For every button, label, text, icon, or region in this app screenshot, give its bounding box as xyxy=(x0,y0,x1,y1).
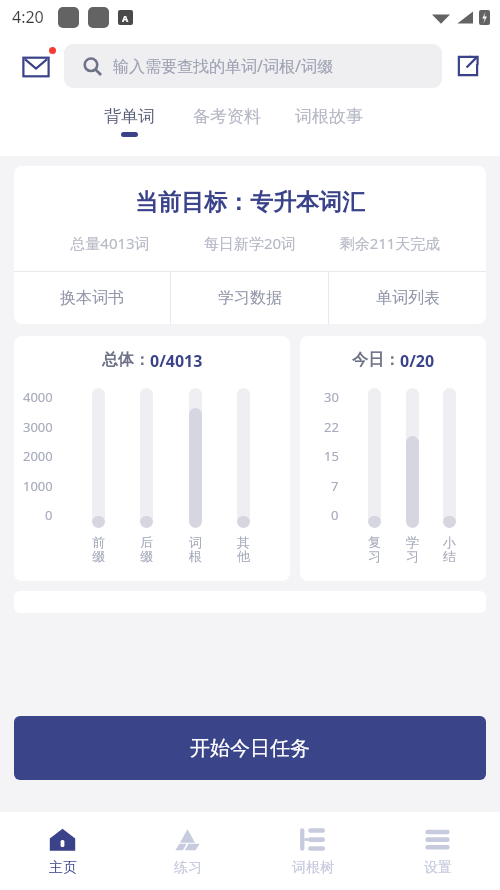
button[interactable]: 词根树 xyxy=(250,812,375,890)
staticText: 背单词 xyxy=(104,106,155,127)
button[interactable]: 输入需要查找的单词/词根/词缀 xyxy=(64,44,442,88)
staticText: 复习 xyxy=(367,534,382,565)
button[interactable]: 单词列表 xyxy=(329,272,486,324)
button[interactable]: 主页 xyxy=(0,812,125,890)
staticText: 单词列表 xyxy=(376,288,440,308)
staticText: 词根树 xyxy=(292,859,334,877)
button[interactable]: 练习 xyxy=(125,812,250,890)
button[interactable]: 设置 xyxy=(375,812,500,890)
staticText: 输入需要查找的单词/词根/词缀 xyxy=(113,55,333,77)
staticText: 后缀 xyxy=(139,534,154,565)
button[interactable]: 学习数据 xyxy=(171,272,328,324)
staticText: 2000 xyxy=(23,447,53,465)
staticText: 3000 xyxy=(23,418,53,436)
staticText: 前缀 xyxy=(91,534,106,565)
button[interactable]: 换本词书 xyxy=(14,272,170,324)
staticText: 22 xyxy=(324,418,339,436)
button[interactable]: 备考资料 xyxy=(189,104,265,139)
staticText: 当前目标：专升本词汇 xyxy=(14,188,486,217)
staticText: 1000 xyxy=(23,477,53,495)
staticText: 15 xyxy=(324,447,339,465)
button[interactable]: 背单词 xyxy=(100,104,159,139)
staticText: 换本词书 xyxy=(60,288,124,308)
staticText: 备考资料 xyxy=(193,106,261,127)
staticText: 30 xyxy=(324,388,339,406)
staticText: 学习数据 xyxy=(218,288,282,308)
staticText: 总体： xyxy=(102,350,150,370)
staticText: 0/20 xyxy=(400,350,435,372)
staticText: 设置 xyxy=(424,859,452,877)
staticText: 学习 xyxy=(405,534,420,565)
staticText: 词根故事 xyxy=(295,106,363,127)
button[interactable]: 开始今日任务 xyxy=(14,716,486,780)
staticText: 总量4013词 xyxy=(40,233,180,253)
staticText: 0 xyxy=(331,506,339,524)
staticText: 0 xyxy=(45,506,53,524)
staticText: 小结 xyxy=(442,534,457,565)
button[interactable]: 词根故事 xyxy=(291,104,367,139)
staticText: 词根 xyxy=(188,534,203,565)
staticText: 4000 xyxy=(23,388,53,406)
staticText: A xyxy=(122,12,129,24)
staticText: 0/4013 xyxy=(150,350,203,372)
staticText: 开始今日任务 xyxy=(190,736,310,761)
staticText: 今日： xyxy=(352,350,400,370)
staticText: 其他 xyxy=(236,534,251,565)
staticText: 练习 xyxy=(174,859,202,877)
staticText: 主页 xyxy=(49,859,77,877)
staticText: 7 xyxy=(331,477,339,495)
button[interactable]: Open external xyxy=(446,44,490,88)
button[interactable]: Messages xyxy=(14,44,58,88)
staticText: 每日新学20词 xyxy=(180,233,320,253)
staticText: 4:20 xyxy=(12,6,44,28)
staticText: 剩余211天完成 xyxy=(320,233,460,253)
